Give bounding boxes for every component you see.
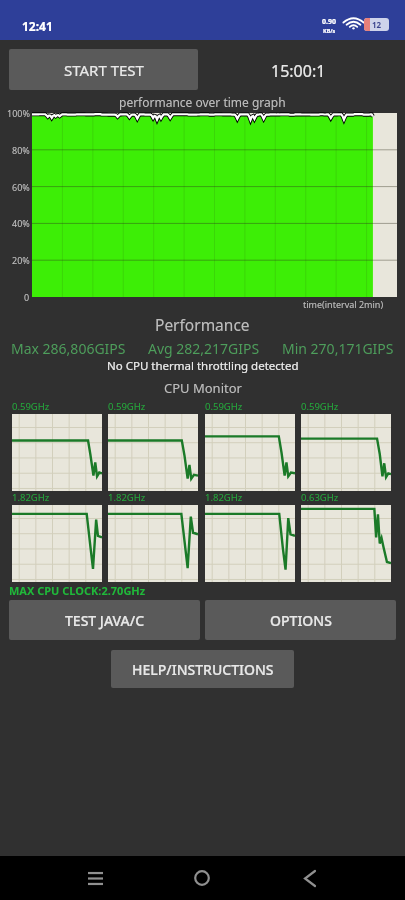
button[interactable]: Recent apps bbox=[71, 856, 119, 900]
staticText: Avg 282,217GIPS bbox=[148, 339, 260, 358]
staticText: START TEST bbox=[64, 60, 144, 80]
button[interactable]: TEST JAVA/C bbox=[9, 600, 200, 640]
staticText: TEST JAVA/C bbox=[65, 611, 145, 630]
staticText: CPU Monitor bbox=[164, 379, 242, 397]
staticText: 100% bbox=[7, 107, 30, 119]
staticText: 12 bbox=[372, 19, 382, 30]
staticText: 12:41 bbox=[22, 18, 53, 34]
staticText: 0.63GHz bbox=[301, 491, 339, 504]
staticText: 0.59GHz bbox=[205, 400, 243, 413]
staticText: 0 bbox=[24, 291, 30, 303]
button[interactable]: OPTIONS bbox=[205, 600, 396, 640]
staticText: OPTIONS bbox=[270, 611, 332, 630]
staticText: time(interval 2min) bbox=[303, 298, 384, 310]
staticText: 15:00:1 bbox=[271, 60, 326, 82]
staticText: Performance bbox=[155, 314, 250, 335]
button[interactable]: START TEST bbox=[9, 49, 198, 90]
staticText: 0.59GHz bbox=[108, 400, 146, 413]
staticText: 0.59GHz bbox=[301, 400, 339, 413]
staticText: KB/s bbox=[323, 27, 336, 34]
staticText: performance over time graph bbox=[119, 94, 286, 110]
staticText: Min 270,171GIPS bbox=[282, 339, 394, 358]
button[interactable]: Back bbox=[286, 856, 334, 900]
staticText: 40% bbox=[12, 217, 30, 229]
staticText: 20% bbox=[12, 254, 30, 266]
staticText: 1.82GHz bbox=[12, 491, 50, 504]
staticText: 1.82GHz bbox=[108, 491, 146, 504]
staticText: 80% bbox=[12, 144, 30, 156]
button[interactable]: HELP/INSTRUCTIONS bbox=[111, 650, 294, 688]
staticText: 1.82GHz bbox=[205, 491, 243, 504]
staticText: 0.90 bbox=[322, 17, 336, 27]
staticText: Max 286,806GIPS bbox=[11, 339, 126, 358]
staticText: HELP/INSTRUCTIONS bbox=[132, 660, 274, 679]
staticText: MAX CPU CLOCK:2.70GHz bbox=[9, 583, 146, 598]
staticText: No CPU thermal throttling detected bbox=[107, 358, 299, 374]
staticText: 60% bbox=[12, 181, 30, 193]
button[interactable]: Home bbox=[178, 856, 226, 900]
staticText: 0.59GHz bbox=[12, 400, 50, 413]
